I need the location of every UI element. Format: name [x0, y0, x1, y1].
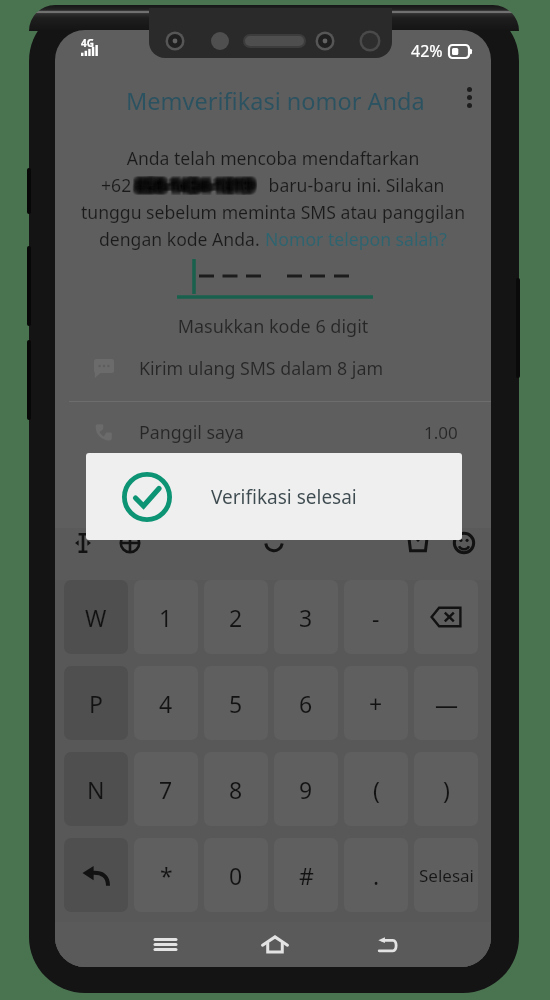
- staticText: 858-1434-1819: [133, 174, 251, 196]
- button[interactable]: 4: [134, 666, 198, 740]
- staticText: +: [369, 688, 383, 719]
- staticText: 858-1434-1819: [133, 173, 251, 195]
- staticText: 0: [229, 860, 243, 891]
- staticText: P: [89, 688, 103, 719]
- staticText: dengan kode Anda.: [99, 227, 265, 251]
- staticText: tunggu sebelum meminta SMS atau panggila…: [55, 200, 491, 224]
- staticText: 858-1434-1819: [138, 177, 256, 199]
- staticText: 858-1434-1819: [135, 171, 253, 193]
- button[interactable]: Kirim ulang SMS dalam 8 jam: [55, 342, 491, 394]
- staticText: 858-1434-1819: [136, 171, 254, 193]
- staticText: 858-1434-1819: [140, 172, 258, 194]
- button[interactable]: [64, 838, 128, 912]
- staticText: 1: [159, 602, 173, 633]
- staticText: 858-1434-1819: [138, 175, 256, 197]
- staticText: 2: [229, 602, 243, 633]
- button[interactable]: 9: [274, 752, 338, 826]
- staticText: 858-1434-1819: [132, 174, 250, 196]
- button[interactable]: Selesai: [414, 838, 478, 912]
- staticText: 858-1434-1819: [139, 174, 257, 196]
- staticText: 858-1434-1819: [134, 173, 252, 195]
- staticText: 7: [159, 774, 173, 805]
- staticText: baru-baru ini. Silakan: [264, 173, 445, 197]
- button[interactable]: Panggil saya: [55, 406, 491, 458]
- staticText: 858-1434-1819: [132, 177, 250, 199]
- staticText: 858-1434-1819: [138, 171, 256, 193]
- staticText: 858-1434-1819: [136, 176, 254, 198]
- button[interactable]: 7: [134, 752, 198, 826]
- button[interactable]: +: [344, 666, 408, 740]
- staticText: 858-1434-1819: [140, 173, 258, 195]
- staticText: 858-1434-1819: [134, 171, 252, 193]
- staticText: 858-1434-1819: [137, 174, 255, 196]
- staticText: 858-1434-1819: [140, 176, 258, 198]
- staticText: 858-1434-1819: [136, 174, 254, 196]
- button[interactable]: 5: [204, 666, 268, 740]
- staticText: 858-1434-1819: [134, 177, 252, 199]
- staticText: 4G: [81, 36, 94, 50]
- staticText: Panggil saya: [139, 420, 245, 444]
- staticText: 858-1434-1819: [135, 176, 253, 198]
- staticText: —: [435, 688, 458, 719]
- button[interactable]: Emoji: [450, 529, 478, 557]
- button[interactable]: 3: [274, 580, 338, 654]
- button[interactable]: Text cursor: [69, 529, 97, 557]
- staticText: 858-1434-1819: [133, 175, 251, 197]
- staticText: 5: [229, 688, 243, 719]
- staticText: 8: [229, 774, 243, 805]
- button[interactable]: 0: [204, 838, 268, 912]
- button[interactable]: Back: [366, 922, 410, 966]
- staticText: 858-1434-1819: [133, 176, 251, 198]
- button[interactable]: ): [414, 752, 478, 826]
- button[interactable]: 1: [134, 580, 198, 654]
- staticText: +62: [101, 173, 136, 197]
- button[interactable]: Language: [116, 529, 144, 557]
- button[interactable]: -: [344, 580, 408, 654]
- button[interactable]: Themes: [404, 529, 432, 557]
- staticText: .: [373, 860, 380, 891]
- staticText: 858-1434-1819: [132, 175, 250, 197]
- staticText: 858-1434-1819: [137, 176, 255, 198]
- staticText: 4: [159, 688, 173, 719]
- staticText: 6: [299, 688, 313, 719]
- staticText: N: [87, 774, 105, 805]
- staticText: 858-1434-1819: [139, 171, 257, 193]
- staticText: 858-1434-1819: [136, 177, 254, 199]
- staticText: 858-1434-1819: [133, 171, 251, 193]
- staticText: 858-1434-1819: [139, 177, 257, 199]
- staticText: Verifikasi selesai: [211, 484, 357, 510]
- staticText: 858-1434-1819: [140, 171, 258, 193]
- button[interactable]: 6: [274, 666, 338, 740]
- staticText: Masukkan kode 6 digit: [55, 314, 491, 339]
- button[interactable]: Nomor telepon salah?: [265, 227, 447, 251]
- staticText: 858-1434-1819: [135, 172, 253, 194]
- staticText: 858-1434-1819: [137, 172, 255, 194]
- button[interactable]: —: [414, 666, 478, 740]
- staticText: Kirim ulang SMS dalam 8 jam: [139, 356, 384, 380]
- button[interactable]: (: [344, 752, 408, 826]
- button[interactable]: *: [134, 838, 198, 912]
- staticText: 3: [299, 602, 313, 633]
- staticText: -: [372, 602, 380, 633]
- button[interactable]: [414, 580, 478, 654]
- button[interactable]: 2: [204, 580, 268, 654]
- staticText: ): [443, 774, 450, 805]
- button[interactable]: P: [64, 666, 128, 740]
- button[interactable]: More options: [449, 77, 489, 117]
- button[interactable]: Stickers: [260, 529, 288, 557]
- button[interactable]: N: [64, 752, 128, 826]
- staticText: 42%: [411, 40, 443, 62]
- staticText: 858-1434-1819: [138, 176, 256, 198]
- button[interactable]: Recent apps: [143, 922, 187, 966]
- staticText: 858-1434-1819: [139, 173, 257, 195]
- button[interactable]: W: [64, 580, 128, 654]
- staticText: 858-1434-1819: [139, 175, 257, 197]
- staticText: 858-1434-1819: [137, 171, 255, 193]
- staticText: 858-1434-1819: [135, 174, 253, 196]
- button[interactable]: #: [274, 838, 338, 912]
- button[interactable]: Home: [253, 922, 297, 966]
- staticText: 858-1434-1819: [137, 175, 255, 197]
- staticText: Selesai: [419, 864, 474, 887]
- button[interactable]: 8: [204, 752, 268, 826]
